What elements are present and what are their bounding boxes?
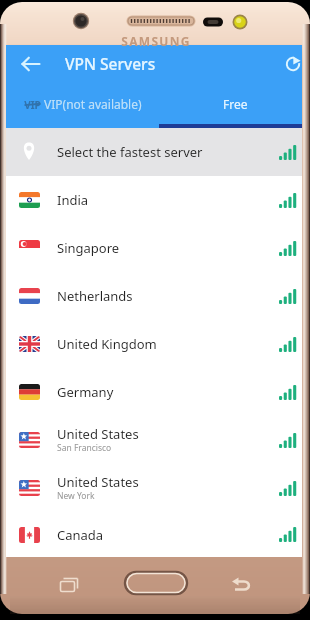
staticText: San Francisco — [57, 442, 112, 454]
staticText: Canada — [57, 526, 104, 544]
button[interactable]: United Kingdom — [6, 320, 302, 368]
button[interactable]: Germany — [6, 368, 302, 416]
staticText: United Kingdom — [57, 335, 157, 353]
button[interactable]: Free — [159, 82, 302, 128]
staticText: United States — [57, 473, 139, 491]
button[interactable]: Recent apps — [55, 570, 83, 598]
button[interactable]: Home — [123, 569, 189, 597]
button[interactable]: India — [6, 176, 302, 224]
staticText: VIP — [24, 98, 41, 110]
button[interactable]: United States — [6, 464, 302, 512]
button[interactable]: Netherlands — [6, 272, 302, 320]
button[interactable]: United States — [6, 416, 302, 464]
staticText: VIP(not available) — [44, 96, 142, 112]
staticText: Singapore — [57, 239, 120, 257]
staticText: India — [57, 191, 89, 209]
staticText: New York — [57, 490, 95, 502]
staticText: VPN Servers — [65, 53, 156, 74]
staticText: Free — [223, 96, 248, 112]
button[interactable]: Canada — [6, 512, 302, 557]
button[interactable]: Singapore — [6, 224, 302, 272]
staticText: United States — [57, 425, 139, 443]
staticText: Select the fastest server — [57, 143, 203, 161]
button[interactable]: VIP — [6, 82, 159, 128]
staticText: Netherlands — [57, 287, 133, 305]
button[interactable]: Refresh — [272, 49, 302, 79]
staticText: Germany — [57, 383, 114, 401]
staticText: SAMSUNG — [106, 33, 206, 49]
button[interactable]: Select the fastest server — [6, 128, 302, 176]
button[interactable]: Back — [227, 570, 255, 598]
button[interactable]: Navigate back — [16, 49, 46, 79]
